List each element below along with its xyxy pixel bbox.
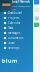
staticText: josef.novak@blum.com: [12, 4, 31, 11]
button[interactable]: Documents: [0, 35, 33, 40]
staticText: Calendar: [8, 21, 20, 25]
button[interactable]: Josef Novak: [0, 0, 33, 10]
staticText: blum: [2, 57, 17, 64]
button[interactable]: Projects: [0, 15, 33, 20]
staticText: Messages: [8, 31, 20, 35]
button[interactable]: Settings: [0, 45, 33, 50]
staticText: Settings: [8, 46, 19, 50]
staticText: Team: [8, 41, 14, 45]
staticText: Dashboard: [8, 11, 22, 15]
staticText: Documents: [8, 36, 23, 40]
staticText: Tasks: [8, 26, 13, 30]
staticText: Projects: [8, 16, 19, 20]
button[interactable]: Messages: [0, 30, 33, 35]
button[interactable]: Team: [0, 40, 33, 45]
button[interactable]: Tasks: [0, 25, 33, 30]
staticText: Josef Novak: [12, 0, 30, 3]
button[interactable]: Dashboard: [0, 10, 33, 15]
button[interactable]: Calendar: [0, 20, 33, 25]
